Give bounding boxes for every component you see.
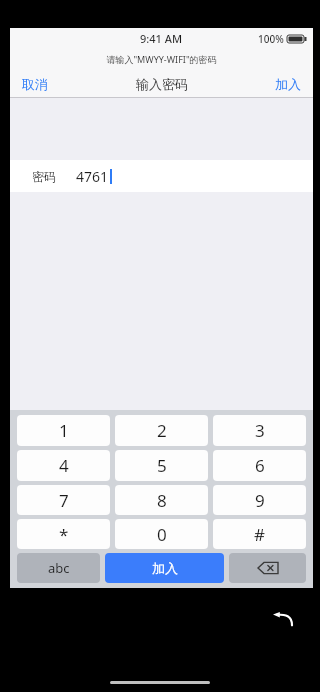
button[interactable]: *	[17, 519, 110, 549]
staticText: 取消	[22, 76, 48, 92]
staticText: 0	[157, 523, 167, 546]
staticText: 6	[255, 454, 265, 477]
staticText: 请输入"MWYY-WIFI"的密码	[106, 53, 217, 65]
staticText: 加入	[275, 76, 301, 92]
button[interactable]: #	[213, 519, 306, 549]
staticText: 7	[59, 489, 69, 512]
staticText: *	[59, 523, 69, 546]
button[interactable]: 密码	[10, 160, 313, 192]
button[interactable]: 4	[17, 450, 110, 481]
staticText: #	[254, 523, 265, 546]
button[interactable]: 9	[213, 485, 306, 515]
button[interactable]: 加入	[105, 553, 224, 583]
staticText: 4761	[76, 167, 109, 186]
staticText: 5	[157, 454, 167, 477]
staticText: 4	[59, 454, 69, 477]
button[interactable]: 1	[17, 415, 110, 446]
staticText: 密码	[32, 169, 56, 184]
button[interactable]: Delete	[229, 553, 306, 583]
button[interactable]: 8	[115, 485, 208, 515]
staticText: 9:41 AM	[140, 31, 183, 46]
button[interactable]: 加入	[265, 70, 313, 98]
button[interactable]: abc	[17, 553, 100, 583]
staticText: 1	[59, 419, 69, 442]
button[interactable]: 2	[115, 415, 208, 446]
button[interactable]: Back	[268, 604, 298, 634]
staticText: abc	[48, 559, 70, 577]
staticText: 输入密码	[136, 76, 188, 92]
button[interactable]: 3	[213, 415, 306, 446]
staticText: 9	[255, 489, 265, 512]
staticText: 8	[157, 489, 167, 512]
staticText: 2	[157, 419, 167, 442]
button[interactable]: 7	[17, 485, 110, 515]
button[interactable]: 取消	[10, 70, 58, 98]
button[interactable]: 0	[115, 519, 208, 549]
button[interactable]: 5	[115, 450, 208, 481]
staticText: 3	[255, 419, 265, 442]
button[interactable]: 6	[213, 450, 306, 481]
staticText: 加入	[152, 560, 178, 576]
staticText: 100%	[258, 32, 284, 46]
